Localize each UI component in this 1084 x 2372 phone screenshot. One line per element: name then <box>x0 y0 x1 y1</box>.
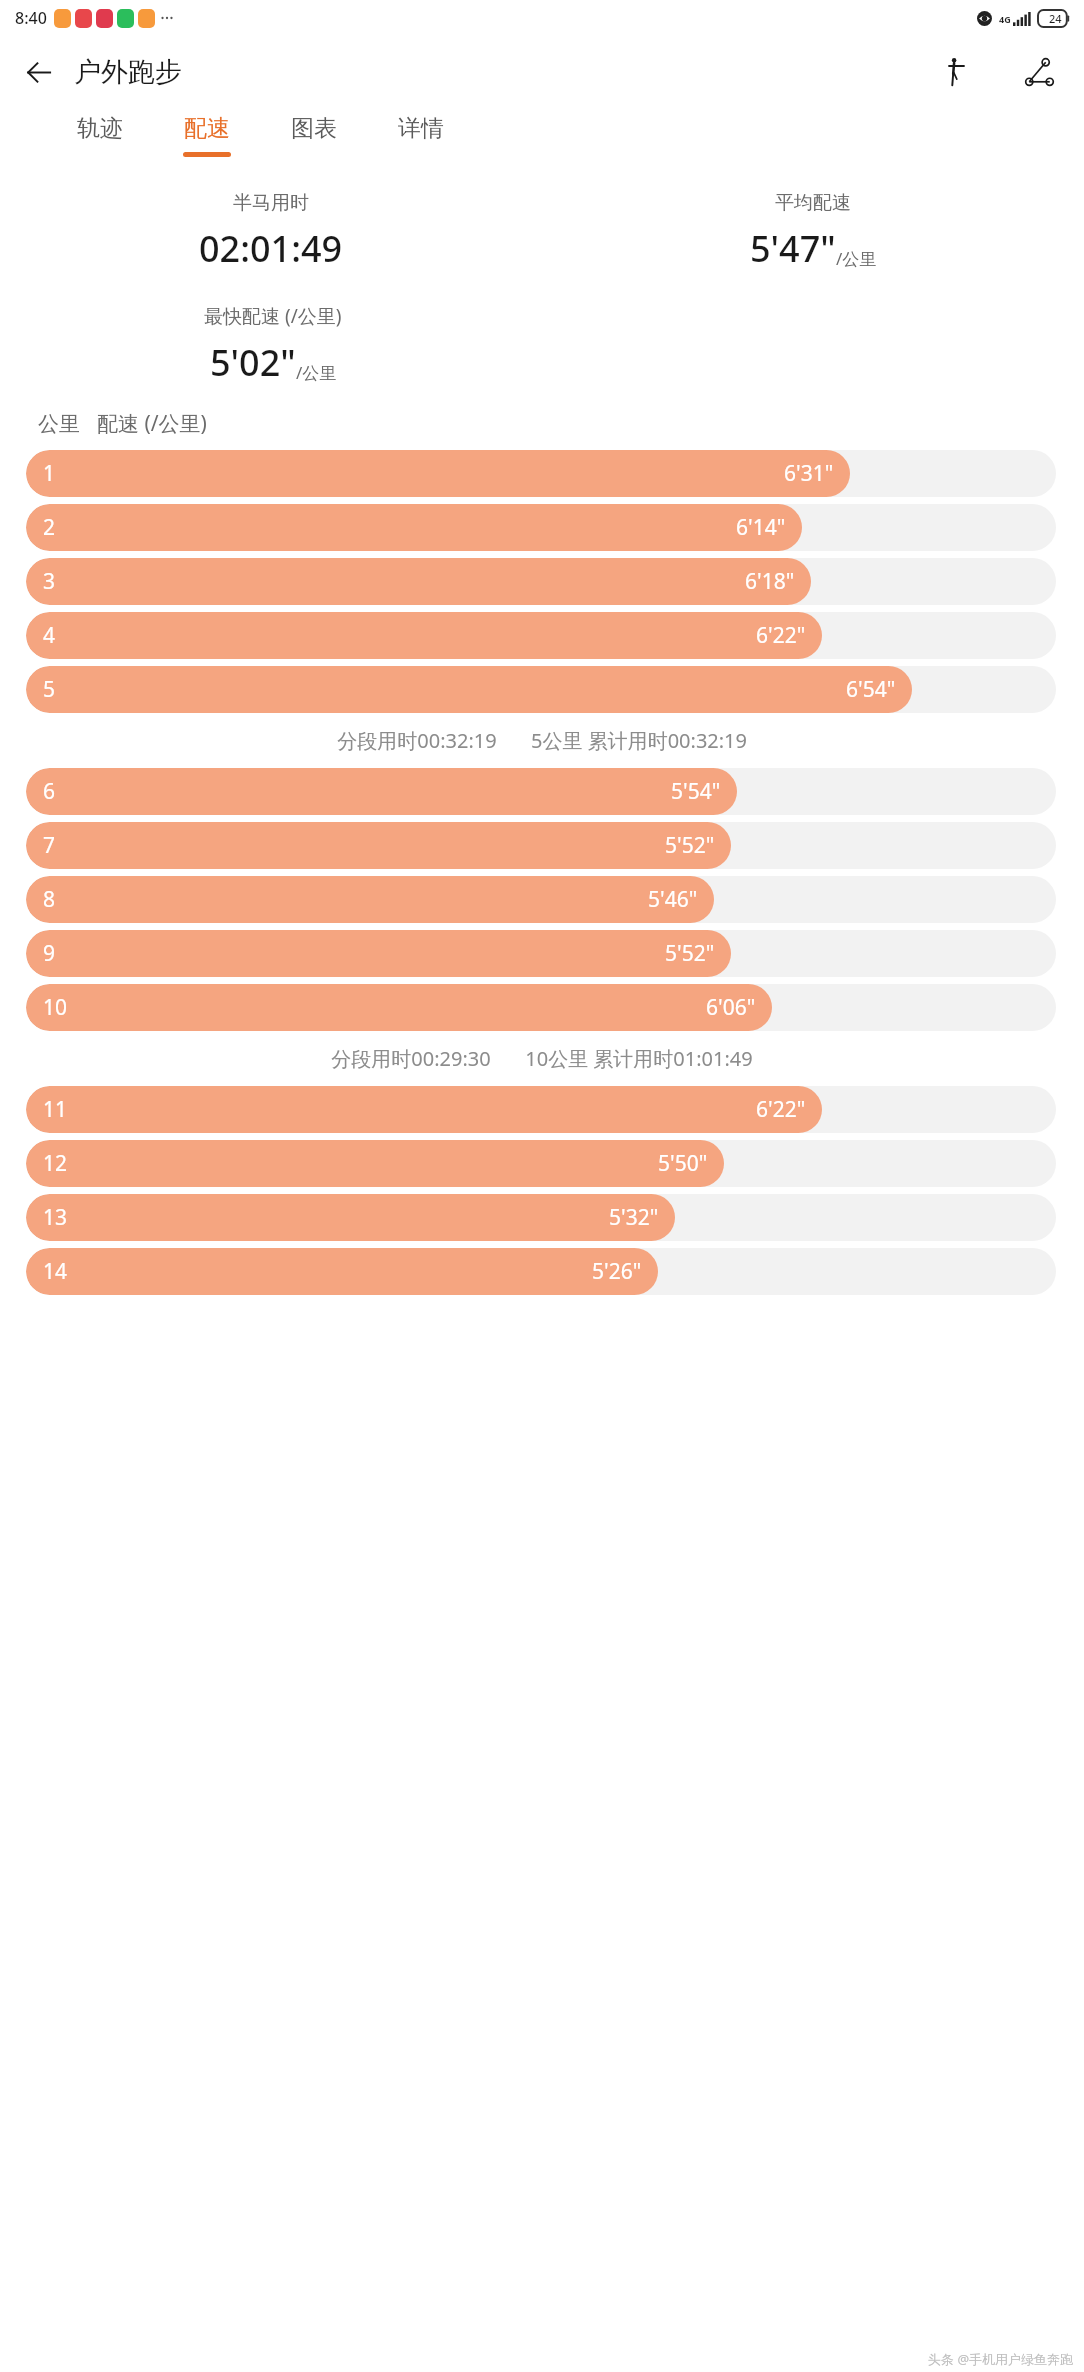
staticText: 5'54" <box>671 777 721 806</box>
staticText: 5'26" <box>592 1257 642 1286</box>
staticText: 6'31" <box>784 459 834 488</box>
button[interactable]: 图表 <box>260 108 367 163</box>
staticText: 配速 <box>184 114 230 143</box>
button[interactable]: 6 <box>26 768 1056 815</box>
staticText: 5 <box>43 675 56 704</box>
staticText: /公里 <box>836 247 877 270</box>
staticText: 6'06" <box>706 993 756 1022</box>
button[interactable]: 10 <box>26 984 1056 1031</box>
staticText: 4 <box>43 621 56 650</box>
staticText: 2 <box>43 513 56 542</box>
staticText: 5'52" <box>665 831 715 860</box>
button[interactable]: 9 <box>26 930 1056 977</box>
button[interactable]: 13 <box>26 1194 1056 1241</box>
staticText: 5'02" <box>210 338 296 387</box>
button[interactable]: Running figure <box>928 45 982 99</box>
staticText: 5'50" <box>658 1149 708 1178</box>
button[interactable]: 11 <box>26 1086 1056 1133</box>
staticText: 半马用时 <box>233 191 309 215</box>
staticText: 8 <box>43 885 56 914</box>
staticText: 8:40 <box>15 7 47 29</box>
staticText: 6'22" <box>756 621 806 650</box>
staticText: 最快配速 (/公里) <box>204 303 342 329</box>
staticText: 10公里 累计用时01:01:49 <box>525 1045 753 1072</box>
staticText: 1 <box>43 459 56 488</box>
staticText: 11 <box>43 1095 68 1124</box>
staticText: 5'47" <box>750 224 836 273</box>
staticText: 头条 @手机用户绿鱼奔跑 <box>928 2350 1074 2368</box>
staticText: 配速 (/公里) <box>97 409 207 438</box>
staticText: 分段用时00:32:19 <box>337 727 497 754</box>
staticText: 5'52" <box>665 939 715 968</box>
button[interactable]: Share <box>1012 45 1066 99</box>
button[interactable]: 5 <box>26 666 1056 713</box>
staticText: 户外跑步 <box>74 55 182 89</box>
staticText: 6 <box>43 777 56 806</box>
button[interactable]: 2 <box>26 504 1056 551</box>
staticText: 5'46" <box>648 885 698 914</box>
staticText: 3 <box>43 567 56 596</box>
button[interactable]: 详情 <box>367 108 474 163</box>
staticText: 10 <box>43 993 68 1022</box>
staticText: 4G <box>999 13 1011 25</box>
button[interactable]: 1 <box>26 450 1056 497</box>
staticText: 13 <box>43 1203 68 1232</box>
staticText: 图表 <box>291 114 337 143</box>
staticText: 6'54" <box>846 675 896 704</box>
staticText: 6'14" <box>736 513 786 542</box>
staticText: 9 <box>43 939 56 968</box>
button[interactable]: 配速 <box>153 108 260 163</box>
button[interactable]: 轨迹 <box>46 108 153 163</box>
staticText: 14 <box>43 1257 68 1286</box>
button[interactable]: 3 <box>26 558 1056 605</box>
button[interactable]: Back <box>14 48 62 96</box>
staticText: 5公里 累计用时00:32:19 <box>531 727 747 754</box>
staticText: 7 <box>43 831 56 860</box>
button[interactable]: 8 <box>26 876 1056 923</box>
button[interactable]: 12 <box>26 1140 1056 1187</box>
button[interactable]: 7 <box>26 822 1056 869</box>
staticText: 24 <box>1049 11 1062 26</box>
staticText: 分段用时00:29:30 <box>331 1045 491 1072</box>
staticText: 5'32" <box>609 1203 659 1232</box>
staticText: 公里 <box>38 411 80 437</box>
staticText: 6'18" <box>745 567 795 596</box>
staticText: 6'22" <box>756 1095 806 1124</box>
staticText: 02:01:49 <box>199 224 343 273</box>
staticText: 平均配速 <box>775 191 851 215</box>
staticText: /公里 <box>296 361 337 384</box>
button[interactable]: 14 <box>26 1248 1056 1295</box>
button[interactable]: 4 <box>26 612 1056 659</box>
staticText: 12 <box>43 1149 68 1178</box>
staticText: 详情 <box>398 114 444 143</box>
staticText: 轨迹 <box>77 114 123 143</box>
